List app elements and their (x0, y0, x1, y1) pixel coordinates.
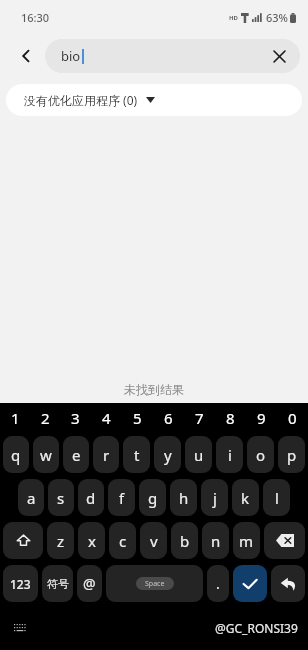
button[interactable]: q (3, 436, 29, 473)
button[interactable]: d (78, 479, 104, 516)
button[interactable]: @ (77, 565, 102, 602)
staticText: @GC_RONSI39 (215, 620, 298, 636)
staticText: o (256, 445, 266, 465)
button[interactable]: k (232, 479, 259, 516)
button[interactable]: 没有优化应用程序 (0) (6, 84, 302, 116)
staticText: x (88, 531, 96, 551)
button[interactable]: 8 (215, 403, 246, 433)
button[interactable]: a (18, 479, 44, 516)
staticText: 123 (10, 576, 31, 592)
button[interactable]: f (108, 479, 135, 516)
staticText: 16:30 (21, 10, 50, 25)
staticText: Space (145, 579, 165, 589)
button[interactable]: 2 (30, 403, 60, 433)
button[interactable]: g (139, 479, 166, 516)
button[interactable]: Change keyboard (8, 616, 32, 640)
staticText: 7 (195, 408, 204, 428)
button[interactable]: x (78, 522, 105, 559)
staticText: 未找到结果 (124, 382, 184, 397)
staticText: . (216, 574, 220, 593)
staticText: 1 (11, 408, 20, 428)
staticText: t (134, 445, 140, 465)
button[interactable]: j (201, 479, 228, 516)
staticText: i (228, 445, 232, 465)
staticText: m (239, 531, 254, 551)
staticText: e (72, 445, 81, 465)
staticText: d (86, 488, 96, 508)
button[interactable]: 123 (3, 565, 38, 602)
staticText: j (213, 488, 217, 508)
staticText: q (11, 445, 21, 465)
button[interactable]: Space (106, 565, 203, 602)
staticText: p (287, 445, 297, 465)
staticText: 4 (102, 408, 111, 428)
button[interactable]: m (233, 522, 260, 559)
button[interactable]: Shift (3, 522, 43, 559)
button[interactable]: 7 (184, 403, 215, 433)
button[interactable]: Backspace (264, 522, 305, 559)
staticText: z (57, 531, 65, 551)
staticText: y (164, 445, 172, 465)
staticText: 6 (164, 408, 173, 428)
button[interactable]: c (109, 522, 136, 559)
staticText: l (275, 488, 279, 508)
button[interactable]: Confirm (233, 565, 267, 602)
staticText: 9 (257, 408, 266, 428)
staticText: g (148, 488, 158, 508)
button[interactable]: e (63, 436, 89, 473)
staticText: f (119, 488, 125, 508)
button[interactable]: Enter (271, 565, 305, 602)
button[interactable]: t (123, 436, 150, 473)
button[interactable]: 6 (153, 403, 184, 433)
button[interactable]: l (263, 479, 290, 516)
button[interactable]: 5 (122, 403, 153, 433)
staticText: k (241, 488, 250, 508)
button[interactable]: v (140, 522, 167, 559)
staticText: 63% (266, 10, 288, 25)
button[interactable]: u (185, 436, 212, 473)
staticText: HD (229, 14, 238, 22)
staticText: n (211, 531, 221, 551)
button[interactable]: z (47, 522, 74, 559)
staticText: 2 (41, 408, 50, 428)
button[interactable]: 9 (246, 403, 277, 433)
staticText: u (194, 445, 204, 465)
staticText: 0 (288, 408, 297, 428)
staticText: 符号 (47, 577, 69, 591)
staticText: h (179, 488, 189, 508)
button[interactable]: s (48, 479, 74, 516)
button[interactable]: o (247, 436, 274, 473)
button[interactable]: y (154, 436, 181, 473)
button[interactable]: 0 (277, 403, 308, 433)
staticText: 3 (71, 408, 80, 428)
staticText: bio (61, 47, 81, 65)
button[interactable]: Clear search (266, 43, 292, 69)
staticText: w (40, 445, 52, 465)
staticText: v (150, 531, 158, 551)
staticText: a (27, 488, 36, 508)
staticText: s (57, 488, 65, 508)
staticText: c (119, 531, 127, 551)
button[interactable]: i (216, 436, 243, 473)
button[interactable]: h (170, 479, 197, 516)
staticText: r (103, 445, 110, 465)
staticText: @ (83, 574, 96, 593)
button[interactable]: 1 (0, 403, 30, 433)
button[interactable]: . (207, 565, 229, 602)
button[interactable]: r (93, 436, 119, 473)
button[interactable]: p (278, 436, 305, 473)
staticText: b (180, 531, 190, 551)
button[interactable]: bio (45, 39, 300, 73)
staticText: 8 (226, 408, 235, 428)
staticText: 没有优化应用程序 (0) (24, 92, 138, 108)
button[interactable]: b (171, 522, 198, 559)
button[interactable]: n (202, 522, 229, 559)
staticText: 5 (133, 408, 142, 428)
button[interactable]: Back (10, 40, 42, 72)
button[interactable]: 3 (60, 403, 91, 433)
button[interactable]: w (33, 436, 59, 473)
button[interactable]: 符号 (42, 565, 73, 602)
button[interactable]: 4 (91, 403, 122, 433)
